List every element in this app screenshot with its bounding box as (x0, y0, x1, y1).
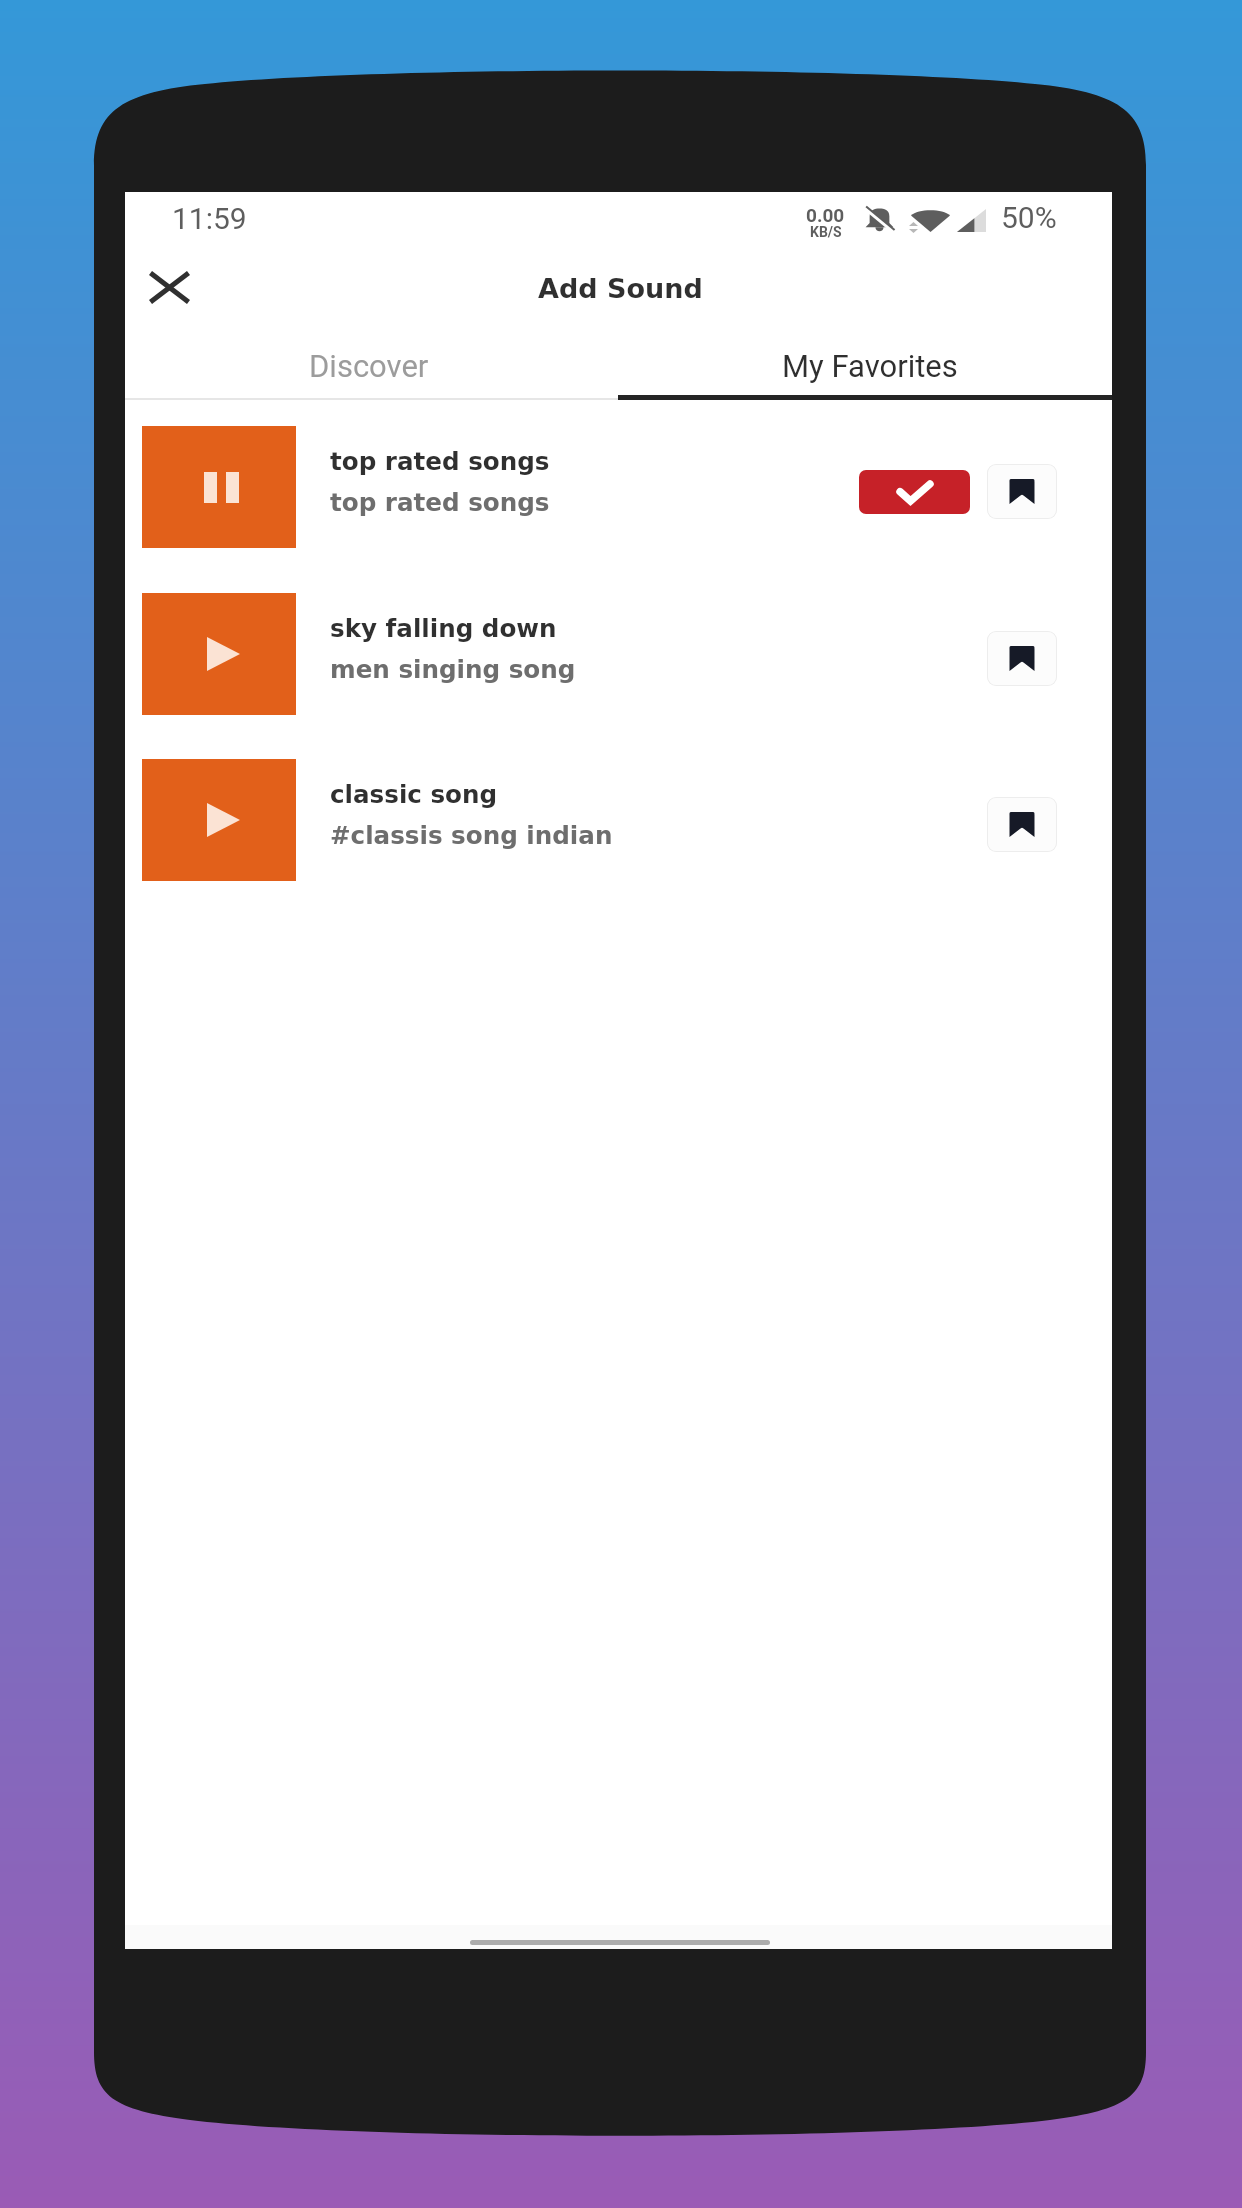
staticText: KB/S (810, 224, 842, 240)
button[interactable]: Discover (125, 331, 618, 401)
staticText: My Favorites (782, 348, 958, 384)
button[interactable]: classic song (125, 737, 1112, 903)
button[interactable]: Bookmark (987, 631, 1057, 686)
button[interactable]: sky falling down (125, 571, 1112, 737)
staticText: Discover (309, 348, 429, 384)
staticText: classic song (330, 780, 498, 809)
staticText: top rated songs (330, 488, 550, 517)
button[interactable]: top rated songs (125, 404, 1112, 570)
staticText: 0.00 (806, 204, 845, 226)
button[interactable]: My Favorites (618, 331, 1112, 401)
button[interactable]: Close (133, 254, 205, 320)
staticText: sky falling down (330, 614, 557, 643)
staticText: men singing song (330, 655, 576, 684)
staticText: 50% (1001, 200, 1057, 235)
staticText: 11:59 (172, 201, 247, 236)
staticText: Add Sound (538, 273, 703, 304)
button[interactable]: Bookmark (987, 797, 1057, 852)
button[interactable]: Selected (859, 470, 970, 514)
staticText: #classis song indian (330, 821, 613, 850)
staticText: top rated songs (330, 447, 550, 476)
button[interactable]: Bookmark (987, 464, 1057, 519)
